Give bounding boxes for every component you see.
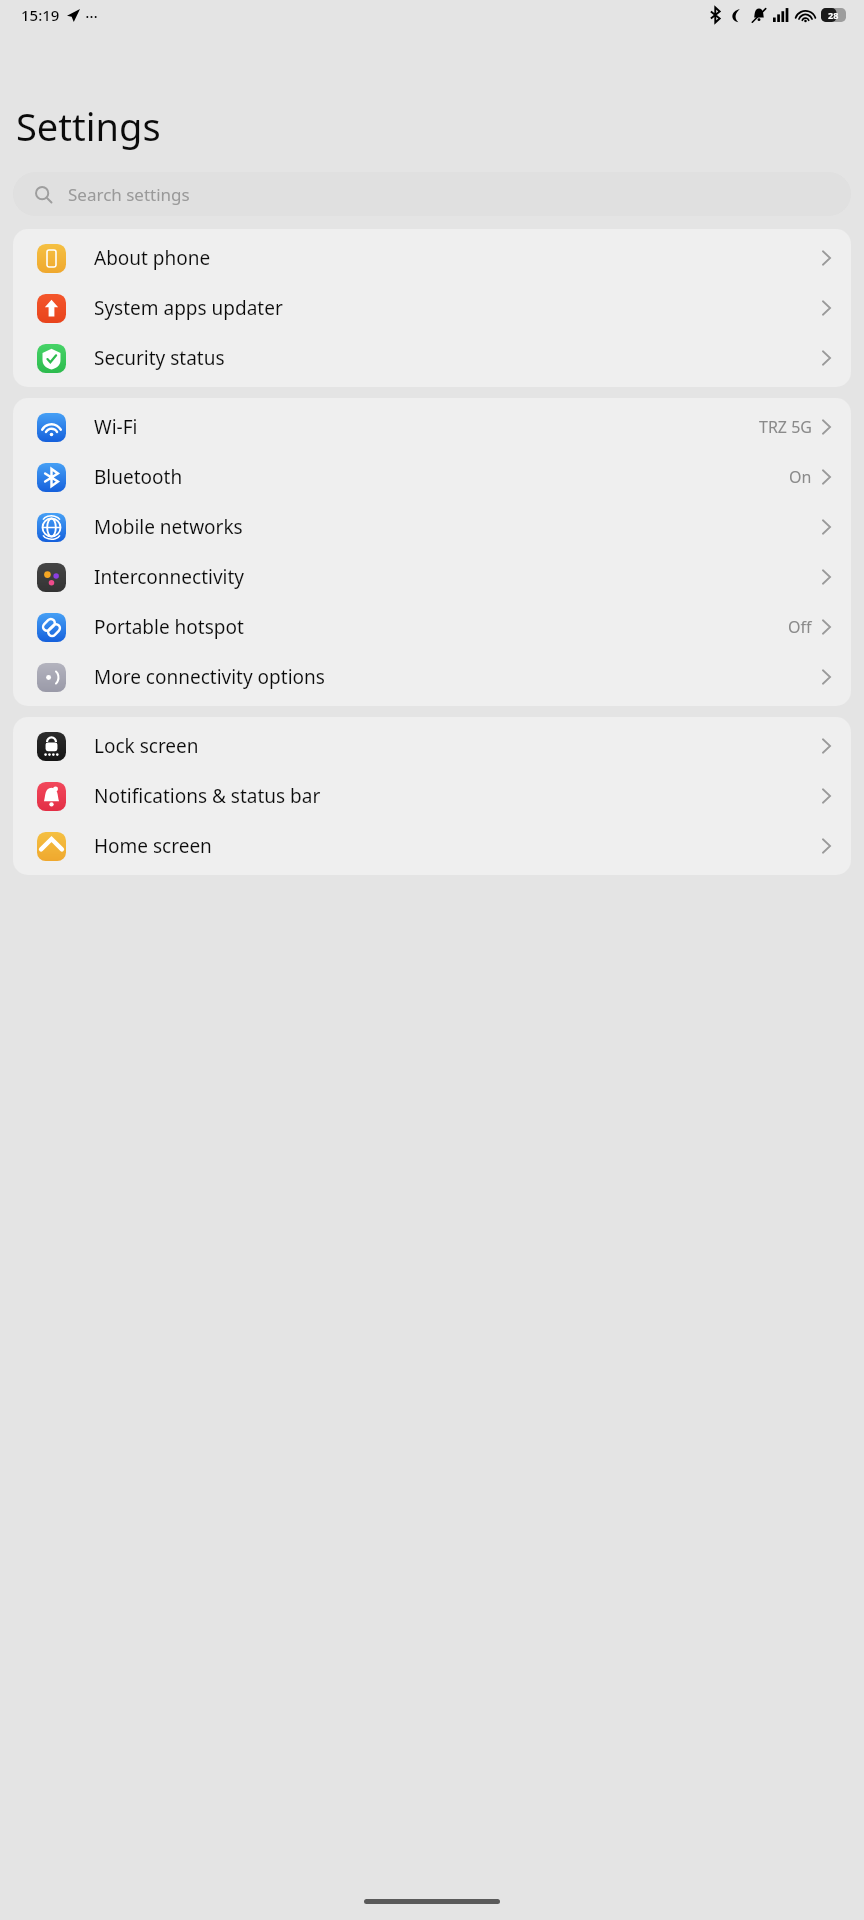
button[interactable]: Bluetooth (13, 452, 851, 502)
staticText: 28 (828, 9, 839, 21)
staticText: About phone (94, 245, 211, 271)
staticText: Interconnectivity (94, 564, 245, 590)
button[interactable]: About phone (13, 233, 851, 283)
button[interactable]: Lock screen (13, 721, 851, 771)
button[interactable]: More connectivity options (13, 652, 851, 702)
button[interactable]: Interconnectivity (13, 552, 851, 602)
staticText: More connectivity options (94, 664, 325, 690)
button[interactable]: Security status (13, 333, 851, 383)
staticText: Mobile networks (94, 514, 243, 540)
staticText: Portable hotspot (94, 614, 244, 640)
staticText: Lock screen (94, 733, 199, 759)
button[interactable]: Mobile networks (13, 502, 851, 552)
staticText: On (789, 466, 812, 488)
button[interactable]: Search settings (13, 172, 851, 216)
staticText: Home screen (94, 833, 212, 859)
button[interactable]: Wi-Fi (13, 402, 851, 452)
staticText: TRZ 5G (759, 416, 812, 438)
staticText: Off (788, 616, 812, 638)
staticText: Security status (94, 345, 225, 371)
button[interactable]: Portable hotspot (13, 602, 851, 652)
button[interactable]: System apps updater (13, 283, 851, 333)
button[interactable]: Notifications & status bar (13, 771, 851, 821)
staticText: 15:19 (21, 5, 60, 25)
staticText: Notifications & status bar (94, 783, 321, 809)
staticText: Wi-Fi (94, 414, 138, 440)
staticText: Settings (16, 100, 161, 152)
staticText: Bluetooth (94, 464, 183, 490)
staticText: System apps updater (94, 295, 283, 321)
staticText: Search settings (68, 183, 190, 206)
button[interactable]: Home screen (13, 821, 851, 871)
